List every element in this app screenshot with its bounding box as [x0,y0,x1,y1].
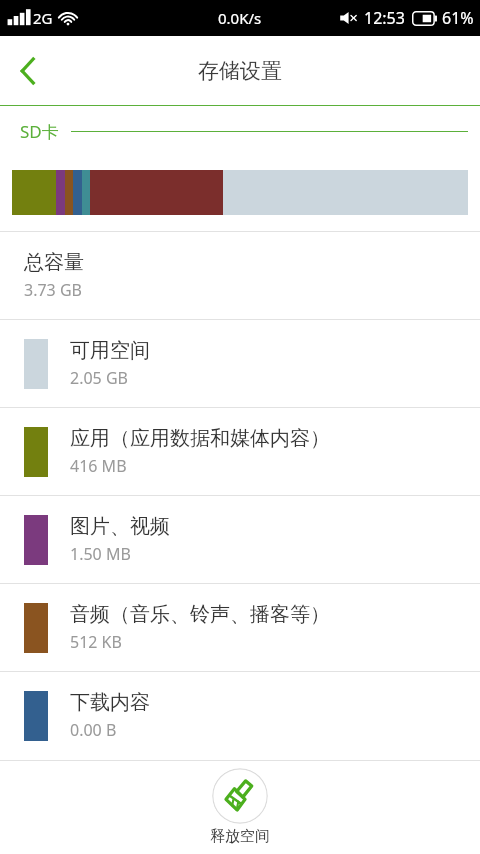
button[interactable]: 总容量 [0,232,480,319]
staticText: 应用（应用数据和媒体内容） [70,426,330,451]
staticText: 音频（音乐、铃声、播客等） [70,602,330,627]
button[interactable]: 可用空间 [0,320,480,407]
staticText: 61% [442,7,474,29]
staticText: 图片、视频 [70,514,170,539]
staticText: 2.05 GB [70,367,128,389]
button[interactable]: 音频（音乐、铃声、播客等） [0,584,480,671]
staticText: 0.00 B [70,719,117,741]
staticText: 12:53 [364,7,405,29]
staticText: 512 KB [70,631,122,653]
staticText: 释放空间 [210,827,270,846]
button[interactable]: Back [0,43,56,99]
button[interactable]: 释放空间 [0,761,480,854]
staticText: SD卡 [20,120,59,143]
staticText: 存储设置 [198,58,282,84]
staticText: 下载内容 [70,690,150,715]
staticText: 3.73 GB [24,279,82,301]
button[interactable]: 应用（应用数据和媒体内容） [0,408,480,495]
staticText: 可用空间 [70,338,150,363]
staticText: 416 MB [70,455,127,477]
button[interactable]: 下载内容 [0,672,480,759]
staticText: 0.0K/s [218,8,262,28]
staticText: 总容量 [24,250,84,275]
staticText: 2G [33,8,53,28]
button[interactable]: 图片、视频 [0,496,480,583]
staticText: 1.50 MB [70,543,131,565]
